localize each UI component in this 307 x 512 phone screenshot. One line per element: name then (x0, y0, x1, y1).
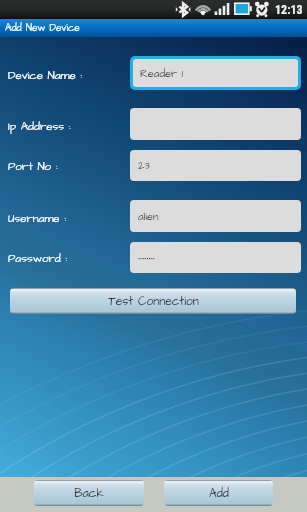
button[interactable]: alien (130, 200, 301, 232)
staticText: alien (138, 209, 159, 224)
staticText: Password : (8, 251, 68, 267)
staticText: 23 (138, 158, 150, 173)
button[interactable]: Reader 1 (133, 59, 298, 87)
button[interactable]: •••••••• (130, 242, 301, 273)
button[interactable] (130, 108, 301, 140)
button[interactable]: Add (164, 480, 273, 506)
staticText: Add New Device (5, 21, 80, 35)
staticText: •••••••• (138, 250, 155, 265)
button[interactable]: 23 (130, 150, 301, 181)
button[interactable]: Back (34, 480, 144, 506)
button[interactable]: Test Connection (10, 288, 296, 314)
staticText: Reader 1 (140, 66, 183, 81)
staticText: Device Name : (8, 68, 83, 84)
staticText: Add (209, 485, 229, 502)
staticText: Test Connection (108, 293, 199, 310)
staticText: Port No : (8, 159, 58, 175)
staticText: Username : (8, 211, 67, 227)
staticText: Back (74, 485, 104, 502)
staticText: 12:13 (275, 3, 303, 17)
staticText: Ip Address : (8, 119, 71, 135)
